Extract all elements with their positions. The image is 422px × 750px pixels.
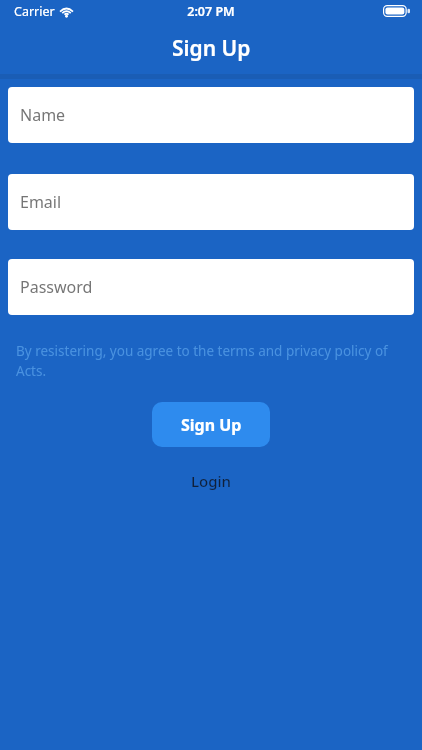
staticText: Sign Up: [172, 34, 251, 63]
staticText: By resistering, you agree to the terms a…: [16, 342, 408, 380]
staticText: Name: [20, 104, 66, 126]
other: Battery full: [383, 5, 410, 17]
button[interactable]: Password: [8, 259, 414, 315]
staticText: Login: [191, 471, 231, 491]
button[interactable]: Login: [175, 467, 247, 495]
button[interactable]: Name: [8, 87, 414, 143]
staticText: Sign Up: [181, 414, 242, 436]
button[interactable]: Email: [8, 174, 414, 230]
staticText: Carrier: [14, 3, 55, 20]
staticText: Password: [20, 276, 93, 298]
button[interactable]: Sign Up: [152, 402, 270, 447]
staticText: Email: [20, 191, 62, 213]
other: Wi-Fi signal: [60, 7, 73, 17]
staticText: 2:07 PM: [187, 3, 235, 20]
